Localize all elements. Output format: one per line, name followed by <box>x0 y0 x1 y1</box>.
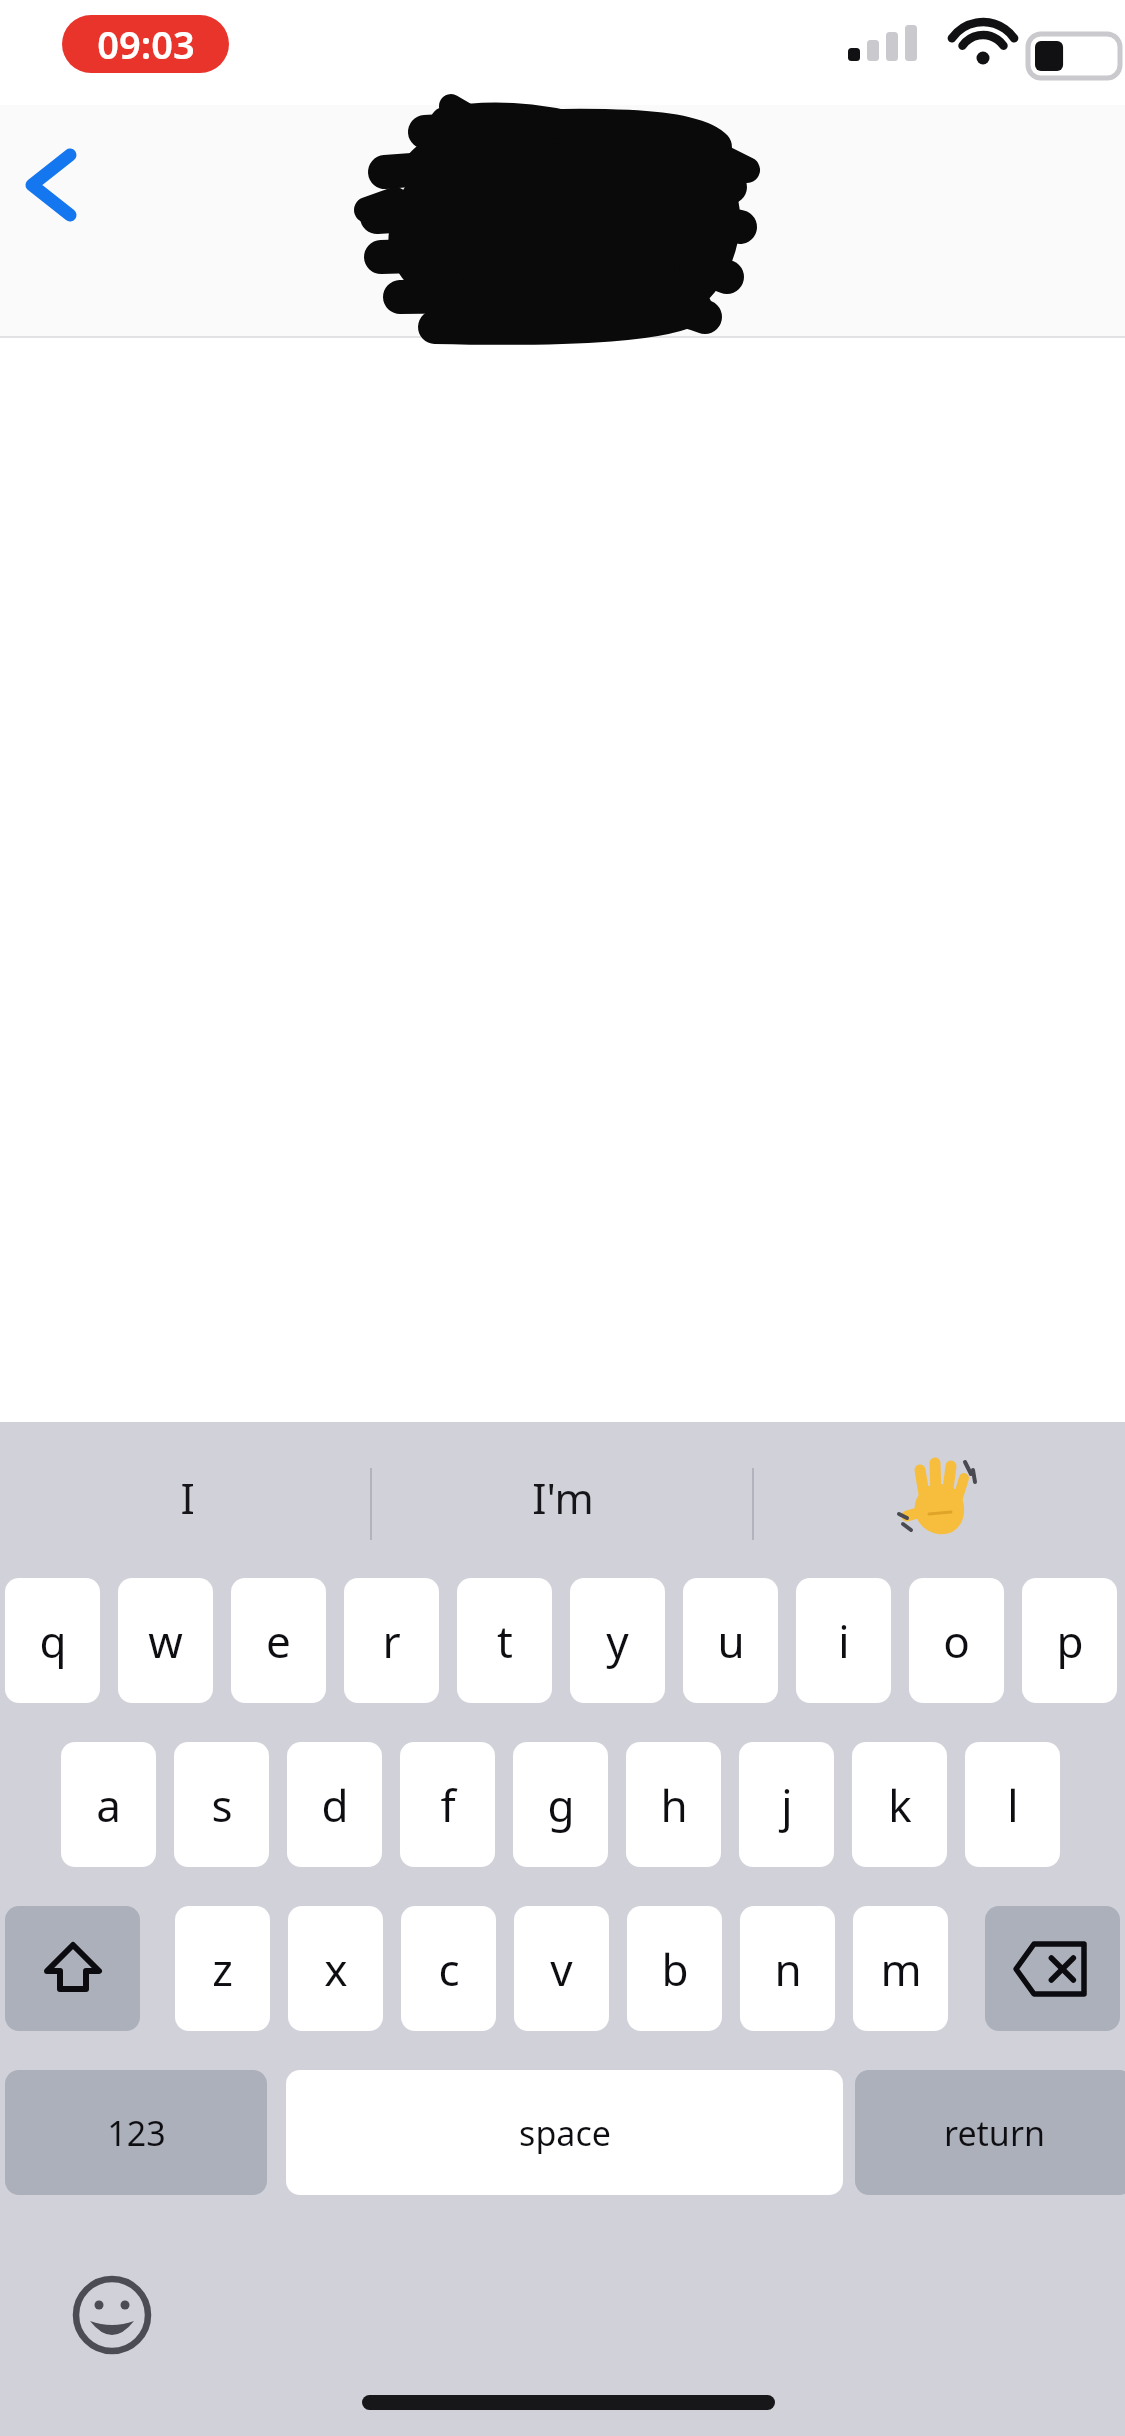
button[interactable]: Shift <box>5 1906 140 2031</box>
staticText: w <box>148 1611 183 1671</box>
button[interactable]: Back <box>8 135 116 235</box>
staticText: d <box>321 1775 349 1835</box>
staticText: e <box>266 1611 291 1671</box>
button[interactable]: m <box>853 1906 948 2031</box>
button[interactable]: d <box>287 1742 382 1867</box>
staticText: return <box>944 2110 1045 2156</box>
button[interactable]: I'm <box>375 1422 750 1572</box>
button[interactable]: Space <box>286 2070 843 2195</box>
staticText: p <box>1056 1611 1084 1671</box>
button[interactable]: t <box>457 1578 552 1703</box>
button[interactable]: Emoji keyboard <box>62 2265 162 2365</box>
button[interactable]: k <box>852 1742 947 1867</box>
staticText: space <box>519 2110 611 2156</box>
staticText: q <box>39 1611 67 1671</box>
staticText: 123 <box>107 2110 166 2156</box>
button[interactable]: n <box>740 1906 835 2031</box>
button[interactable]: r <box>344 1578 439 1703</box>
button[interactable]: c <box>401 1906 496 2031</box>
button[interactable]: Return <box>855 2070 1125 2195</box>
staticText: a <box>96 1775 121 1835</box>
button[interactable]: Numbers and symbols <box>5 2070 267 2195</box>
staticText: r <box>382 1611 401 1671</box>
staticText: I'm <box>532 1469 594 1526</box>
button[interactable]: v <box>514 1906 609 2031</box>
staticText: c <box>438 1939 460 1999</box>
button[interactable]: p <box>1022 1578 1117 1703</box>
button[interactable]: e <box>231 1578 326 1703</box>
staticText: i <box>838 1611 850 1671</box>
button[interactable]: s <box>174 1742 269 1867</box>
button[interactable]: j <box>739 1742 834 1867</box>
button[interactable]: b <box>627 1906 722 2031</box>
button[interactable]: u <box>683 1578 778 1703</box>
staticText: x <box>324 1939 348 1999</box>
button[interactable]: h <box>626 1742 721 1867</box>
staticText: n <box>774 1939 802 1999</box>
staticText: y <box>606 1611 629 1671</box>
button[interactable]: g <box>513 1742 608 1867</box>
staticText: k <box>888 1775 912 1835</box>
button[interactable]: i <box>796 1578 891 1703</box>
staticText: o <box>943 1611 970 1671</box>
staticText: I <box>180 1469 195 1526</box>
staticText: j <box>781 1775 793 1835</box>
button[interactable]: Recording indicator 09:03 <box>62 15 229 73</box>
button[interactable]: l <box>965 1742 1060 1867</box>
staticText: m <box>880 1939 922 1999</box>
staticText: u <box>717 1611 745 1671</box>
button[interactable]: y <box>570 1578 665 1703</box>
button[interactable]: Waving hand emoji suggestion <box>750 1422 1125 1572</box>
button[interactable]: Backspace <box>985 1906 1120 2031</box>
button[interactable]: x <box>288 1906 383 2031</box>
staticText: z <box>212 1939 233 1999</box>
button[interactable]: I <box>0 1422 375 1572</box>
button[interactable]: f <box>400 1742 495 1867</box>
button[interactable]: q <box>5 1578 100 1703</box>
button[interactable]: w <box>118 1578 213 1703</box>
staticText: s <box>211 1775 233 1835</box>
staticText: v <box>550 1939 573 1999</box>
staticText: l <box>1007 1775 1019 1835</box>
staticText: t <box>497 1611 513 1671</box>
staticText: b <box>661 1939 689 1999</box>
staticText: f <box>440 1775 456 1835</box>
staticText: 09:03 <box>97 18 195 70</box>
button[interactable]: o <box>909 1578 1004 1703</box>
button[interactable]: a <box>61 1742 156 1867</box>
button[interactable]: z <box>175 1906 270 2031</box>
staticText: h <box>660 1775 688 1835</box>
staticText: g <box>547 1775 575 1835</box>
